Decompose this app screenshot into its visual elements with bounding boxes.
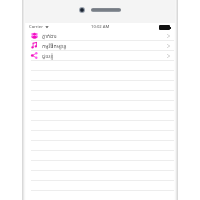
button[interactable]: ជួយខ្ញុំ (26, 51, 174, 61)
button[interactable]: ភ្នាក់ងារ (26, 31, 174, 41)
other: Open (167, 34, 170, 38)
staticText: 10:02 AM (91, 24, 110, 30)
staticText: Carrier (29, 24, 43, 30)
staticText: ជួយខ្ញុំ (42, 52, 54, 59)
staticText: ភ្នាក់ងារ (42, 32, 57, 39)
staticText: កម្មវិធីកម្សាន្ត (42, 42, 67, 49)
other: Open (167, 44, 170, 48)
button[interactable]: កម្មវិធីកម្សាន្ត (26, 41, 174, 51)
other: Open (167, 54, 170, 58)
